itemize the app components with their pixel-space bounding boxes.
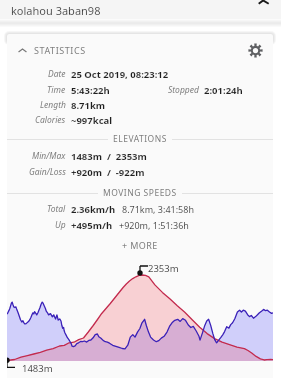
staticText: +920m, 1:51:36h — [119, 219, 189, 231]
staticText: ~997kcal — [71, 114, 113, 127]
button[interactable]: kolahou 3aban98 — [0, 0, 281, 19]
staticText: +920m / -922m — [71, 166, 145, 179]
button[interactable]: Settings — [248, 43, 263, 58]
staticText: Gain/Loss — [29, 166, 66, 178]
staticText: 2:01:24h — [204, 84, 243, 97]
staticText: Total — [47, 203, 66, 215]
staticText: 1483m / 2353m — [71, 150, 147, 163]
staticText: Time — [47, 84, 66, 96]
staticText: Date — [48, 68, 66, 80]
staticText: Stopped — [168, 84, 199, 96]
staticText: 2353m — [148, 262, 179, 275]
staticText: Min/Max — [32, 150, 66, 162]
staticText: 8.71km — [71, 99, 106, 112]
staticText: 8.71km, 3:41:58h — [122, 203, 194, 215]
staticText: 5:43:22h — [71, 84, 110, 97]
staticText: Length — [40, 99, 66, 111]
staticText: kolahou 3aban98 — [11, 3, 101, 18]
staticText: 1483m — [22, 362, 53, 375]
button[interactable]: STATISTICS — [18, 42, 86, 58]
button[interactable]: + MORE — [7, 237, 273, 253]
staticText: ELEVATIONS — [113, 133, 167, 145]
staticText: MOVING SPEEDS — [103, 187, 177, 199]
staticText: 25 Oct 2019, 08:23:12 — [71, 68, 169, 81]
staticText: +495m/h — [71, 219, 113, 232]
button[interactable]: Collapse — [256, 0, 272, 11]
staticText: + MORE — [122, 239, 158, 251]
staticText: Up — [55, 219, 66, 231]
staticText: STATISTICS — [34, 44, 86, 56]
staticText: 2.36km/h — [71, 203, 116, 216]
staticText: Calories — [35, 114, 66, 126]
